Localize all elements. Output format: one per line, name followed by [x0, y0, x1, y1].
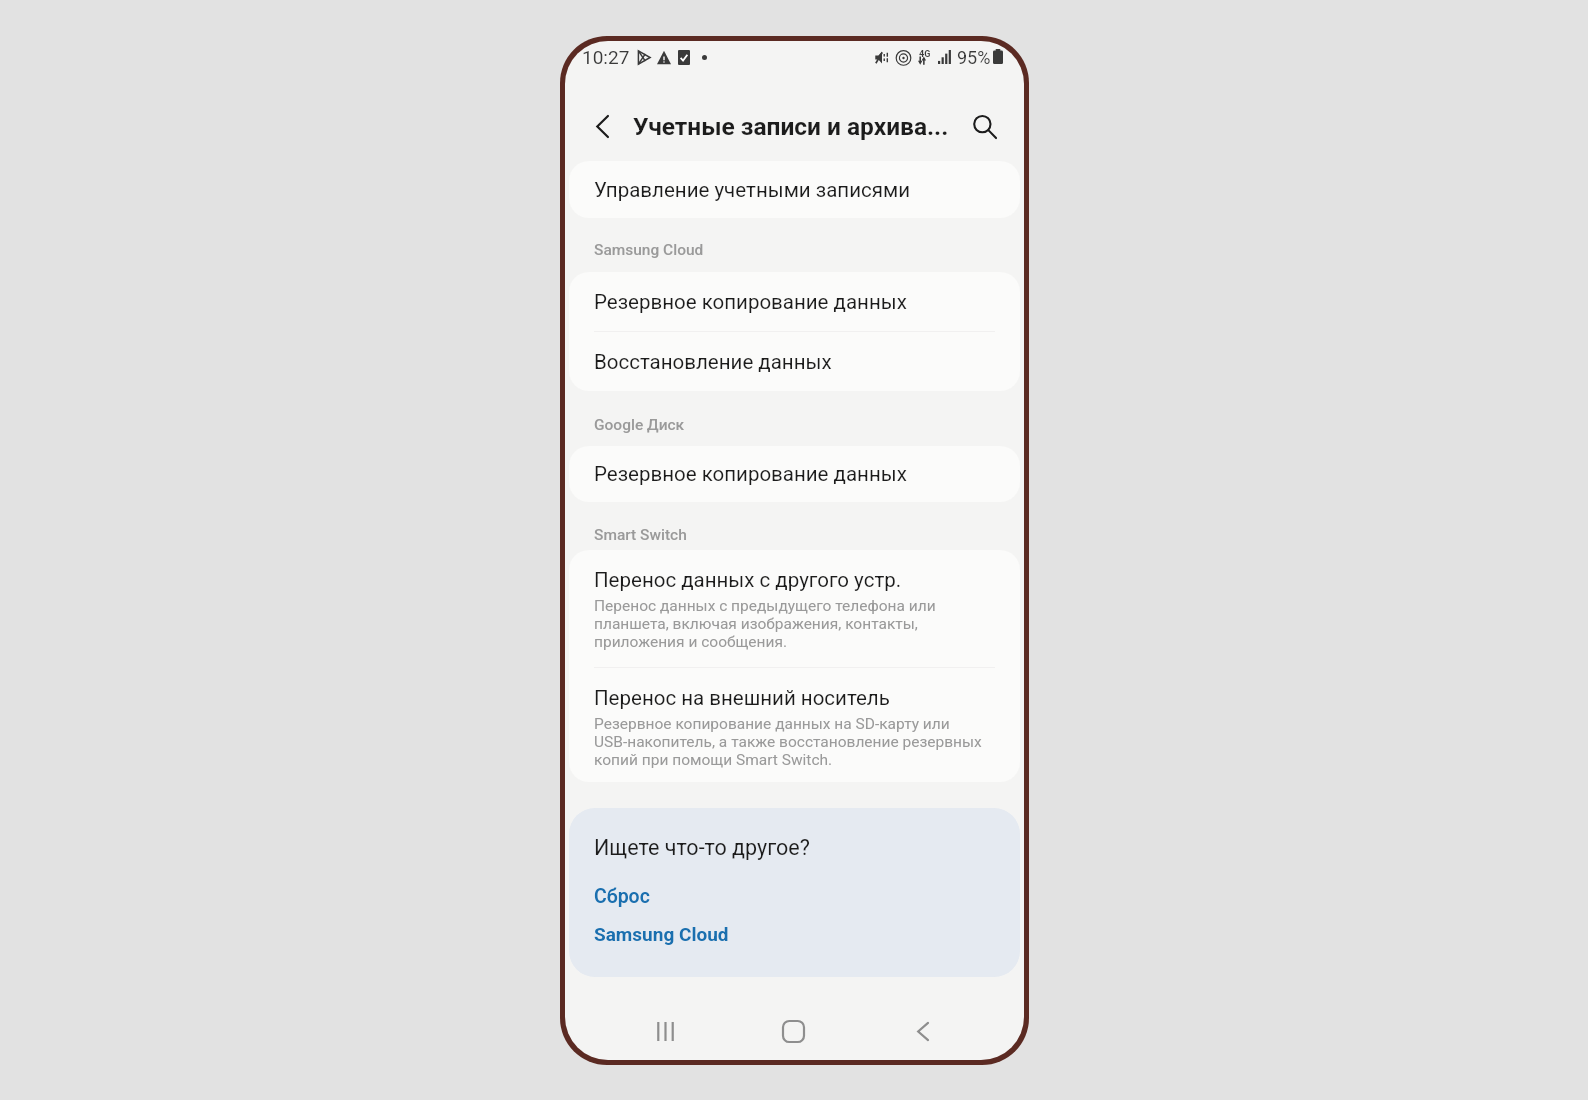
- staticText: Управление учетными записями: [594, 178, 910, 202]
- staticText: Учетные записи и архива...: [633, 112, 949, 141]
- button[interactable]: Резервное копирование данных: [569, 446, 1020, 502]
- button[interactable]: Samsung Cloud: [594, 923, 729, 945]
- staticText: Google Диск: [594, 416, 685, 434]
- button[interactable]: Back: [580, 104, 624, 148]
- staticText: Перенос данных с предыдущего телефона ил…: [594, 597, 986, 651]
- staticText: Smart Switch: [594, 526, 687, 544]
- staticText: 10:27: [582, 46, 630, 68]
- staticText: Резервное копирование данных: [594, 462, 907, 486]
- staticText: Резервное копирование данных: [594, 290, 907, 314]
- button[interactable]: Перенос данных с другого устр.: [569, 550, 1020, 667]
- staticText: Восстановление данных: [594, 350, 832, 374]
- button[interactable]: Recent apps: [643, 1009, 687, 1053]
- staticText: Сброс: [594, 885, 650, 908]
- staticText: Samsung Cloud: [594, 241, 704, 259]
- button[interactable]: Home: [771, 1009, 815, 1053]
- staticText: 95%: [957, 47, 991, 68]
- staticText: Перенос данных с другого устр.: [594, 568, 902, 592]
- button[interactable]: Восстановление данных: [569, 332, 1020, 391]
- staticText: Перенос на внешний носитель: [594, 686, 890, 710]
- button[interactable]: Перенос на внешний носитель: [569, 668, 1020, 782]
- staticText: Ищете что-то другое?: [594, 835, 810, 860]
- button[interactable]: Управление учетными записями: [569, 161, 1020, 218]
- button[interactable]: Search: [963, 105, 1007, 149]
- staticText: Резервное копирование данных на SD-карту…: [594, 715, 986, 769]
- staticText: Samsung Cloud: [594, 923, 729, 945]
- button[interactable]: Резервное копирование данных: [569, 272, 1020, 331]
- button[interactable]: Back: [901, 1009, 945, 1053]
- staticText: 4G: [919, 49, 931, 60]
- button[interactable]: Сброс: [594, 885, 650, 908]
